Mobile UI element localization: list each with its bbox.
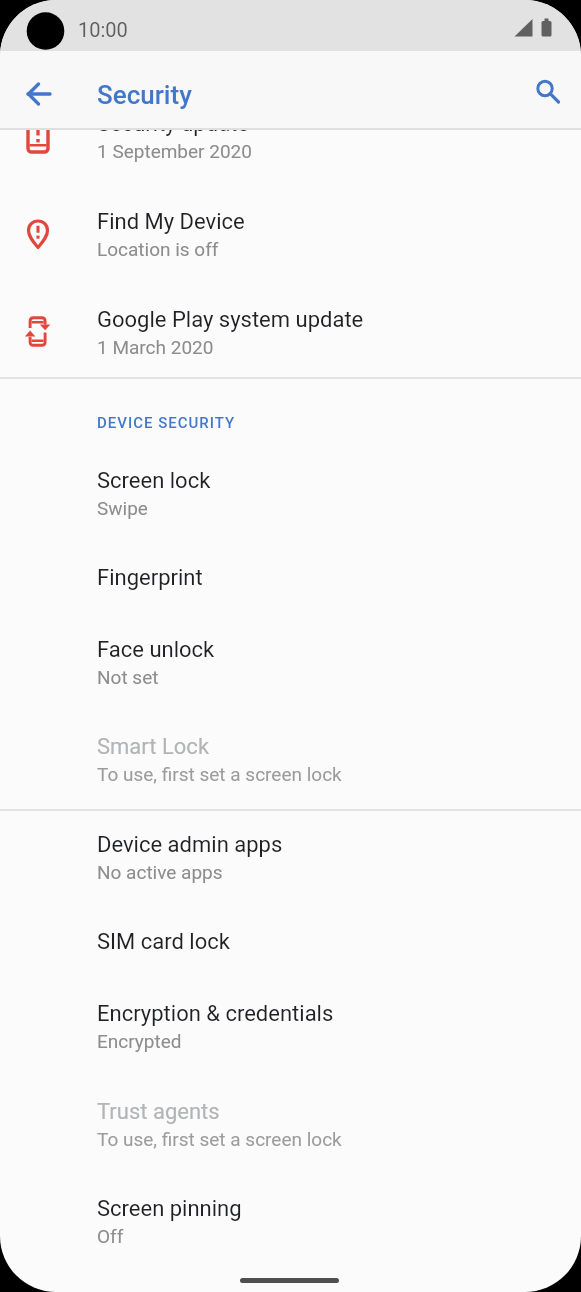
- button[interactable]: SIM card lock: [0, 906, 581, 978]
- button[interactable]: Fingerprint: [0, 542, 581, 614]
- button[interactable]: Device admin apps: [0, 816, 581, 914]
- button[interactable]: Face unlock: [0, 621, 581, 719]
- button[interactable]: Security update: [0, 95, 581, 193]
- staticText: Location is off: [97, 238, 219, 260]
- staticText: Security update: [97, 111, 249, 137]
- staticText: Face unlock: [97, 637, 215, 663]
- staticText: Swipe: [97, 497, 148, 519]
- staticText: Find My Device: [97, 209, 245, 235]
- button[interactable]: Smart Lock: [0, 718, 581, 816]
- staticText: Trust agents: [97, 1099, 220, 1125]
- staticText: 1 March 2020: [97, 336, 214, 358]
- button[interactable]: Encryption & credentials: [0, 985, 581, 1083]
- staticText: Not set: [97, 666, 159, 688]
- staticText: Screen pinning: [97, 1196, 242, 1222]
- staticText: SIM card lock: [97, 929, 230, 955]
- button[interactable]: Screen lock: [0, 452, 581, 550]
- staticText: No active apps: [97, 861, 223, 883]
- staticText: Smart Lock: [97, 734, 210, 760]
- button[interactable]: Trust agents: [0, 1083, 581, 1181]
- staticText: Screen lock: [97, 468, 211, 494]
- button[interactable]: [523, 68, 571, 116]
- staticText: Fingerprint: [97, 565, 203, 591]
- staticText: 1 September 2020: [97, 140, 252, 162]
- staticText: Encrypted: [97, 1030, 182, 1052]
- staticText: DEVICE SECURITY: [97, 414, 236, 432]
- staticText: 10:00: [78, 18, 128, 41]
- staticText: To use, first set a screen lock: [97, 763, 342, 785]
- staticText: To use, first set a screen lock: [97, 1128, 342, 1150]
- button[interactable]: Find My Device: [0, 193, 581, 291]
- staticText: Device admin apps: [97, 832, 283, 858]
- staticText: Encryption & credentials: [97, 1001, 334, 1027]
- button[interactable]: Screen pinning: [0, 1180, 581, 1278]
- staticText: Off: [97, 1225, 124, 1247]
- button[interactable]: Google Play system update: [0, 291, 581, 389]
- button[interactable]: [15, 70, 63, 118]
- staticText: Security: [97, 80, 192, 110]
- staticText: Google Play system update: [97, 307, 364, 333]
